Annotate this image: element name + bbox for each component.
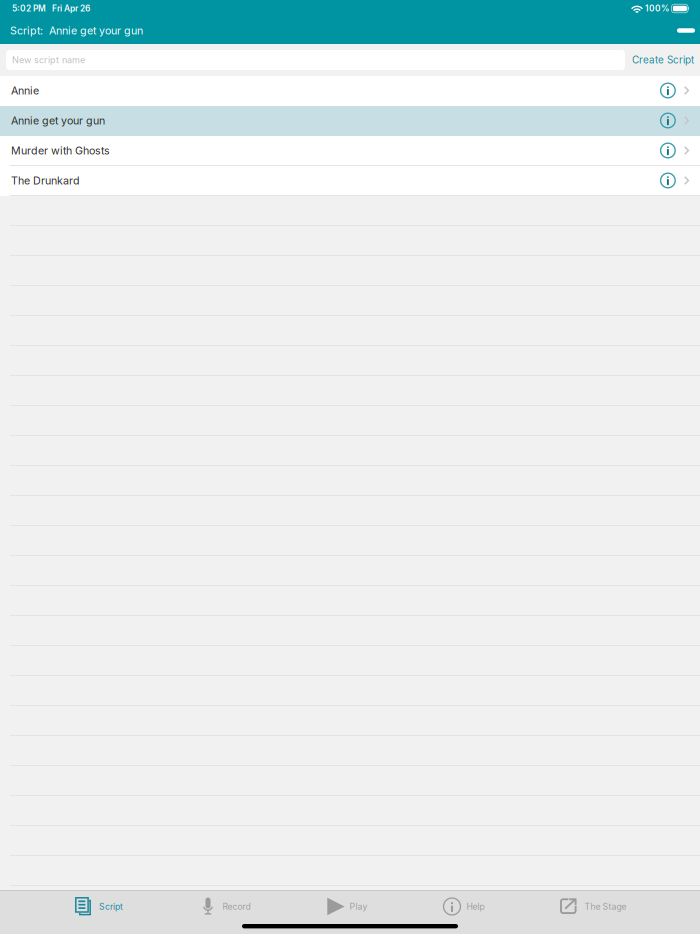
button[interactable]: Script — [75, 890, 123, 934]
button[interactable]: Annie — [0, 76, 700, 106]
button[interactable]: Help — [443, 890, 484, 934]
button[interactable]: More — [667, 22, 695, 39]
staticText: The Drunkard — [11, 174, 80, 187]
staticText: Create Script — [632, 54, 694, 66]
staticText: Fri Apr 26 — [52, 3, 90, 14]
button[interactable]: The Stage — [560, 890, 626, 934]
button[interactable]: Murder with Ghosts — [0, 136, 700, 166]
staticText: 5:02 PM — [12, 3, 46, 14]
button[interactable]: Create Script — [631, 47, 695, 73]
button[interactable]: Record — [202, 890, 250, 934]
staticText: The Stage — [584, 901, 626, 912]
staticText: 100% — [645, 3, 669, 14]
staticText: Script: Annie get your gun — [10, 24, 143, 37]
staticText: Play — [349, 901, 367, 912]
button[interactable]: Info about Annie — [660, 82, 676, 98]
staticText: Record — [222, 901, 250, 912]
staticText: Annie — [11, 84, 39, 97]
staticText: New script name — [12, 54, 85, 65]
button[interactable]: Play — [327, 890, 367, 934]
staticText: Murder with Ghosts — [11, 144, 110, 157]
button[interactable]: Annie get your gun — [0, 106, 700, 136]
button[interactable]: The Drunkard — [0, 166, 700, 196]
staticText: Help — [466, 901, 484, 912]
staticText: Annie get your gun — [11, 114, 105, 127]
staticText: Script — [99, 901, 123, 912]
button[interactable]: Info about Annie get your gun — [660, 112, 676, 128]
button[interactable]: New script name — [6, 50, 625, 70]
button[interactable]: Info about The Drunkard — [660, 172, 676, 188]
button[interactable]: Info about Murder with Ghosts — [660, 142, 676, 158]
